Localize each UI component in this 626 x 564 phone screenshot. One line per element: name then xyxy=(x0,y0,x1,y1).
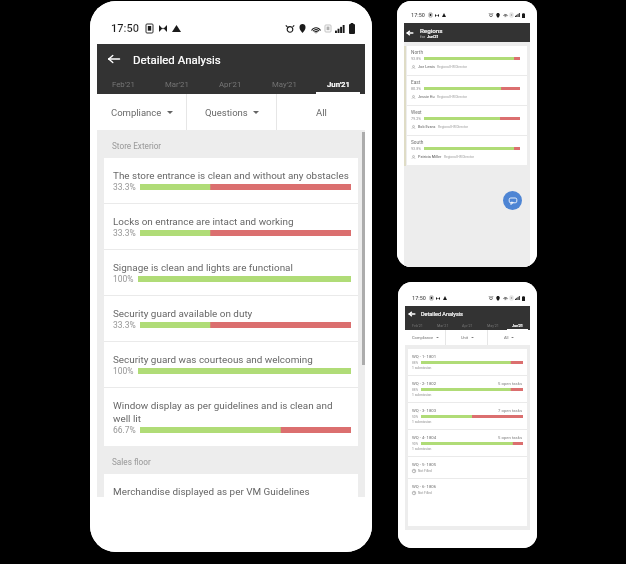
staticText: WQ - 2- 1802 xyxy=(412,381,437,386)
staticText: 66.7% xyxy=(113,425,136,435)
staticText: Apr'21 xyxy=(219,80,242,89)
staticText: May'21 xyxy=(487,324,499,328)
button[interactable]: WQ - 4- 1804 xyxy=(408,430,527,456)
button[interactable]: Back xyxy=(408,310,415,317)
staticText: Not Filled xyxy=(418,491,432,495)
button[interactable]: Security guard available on duty xyxy=(104,296,358,341)
staticText: Window display as per guidelines and is … xyxy=(113,400,351,425)
staticText: 5 open tasks xyxy=(498,381,523,386)
staticText: 88% xyxy=(412,388,419,392)
staticText: Mar'21 xyxy=(165,80,189,89)
button[interactable]: WQ - 5- 1805 xyxy=(408,457,527,478)
button[interactable]: Unit xyxy=(446,330,488,345)
staticText: Detailed Analysis xyxy=(421,311,463,317)
button[interactable]: Window display as per guidelines and is … xyxy=(104,388,358,446)
button[interactable]: All xyxy=(277,94,365,130)
button[interactable]: West xyxy=(407,106,527,135)
staticText: West xyxy=(411,110,422,116)
staticText: Jessie Hu xyxy=(418,95,435,99)
staticText: 1 submission xyxy=(412,366,432,370)
staticText: 80.3% xyxy=(411,87,422,91)
staticText: 100% xyxy=(113,366,134,376)
button[interactable]: Feb'21 xyxy=(97,74,150,94)
button[interactable]: North xyxy=(407,46,527,75)
button[interactable]: May'21 xyxy=(257,74,311,94)
staticText: South xyxy=(411,140,424,146)
staticText: Regional HR Director xyxy=(444,155,474,159)
staticText: The store entrance is clean and without … xyxy=(113,170,349,182)
button[interactable]: WQ - 3- 1803 xyxy=(408,403,527,429)
staticText: Detailed Analysis xyxy=(133,53,221,66)
button[interactable]: Questions xyxy=(187,94,277,130)
button[interactable]: Jun'21 xyxy=(505,321,530,330)
staticText: Signage is clean and lights are function… xyxy=(113,262,293,274)
staticText: Compliance xyxy=(412,335,434,340)
staticText: Compliance xyxy=(111,107,162,118)
staticText: East xyxy=(411,80,421,86)
staticText: Not Filled xyxy=(418,469,432,473)
staticText: Store Exterior xyxy=(112,141,162,151)
staticText: All xyxy=(504,335,509,340)
button[interactable]: Back xyxy=(406,29,413,36)
staticText: All xyxy=(316,107,327,118)
staticText: Security guard was courteous and welcomi… xyxy=(113,354,313,366)
staticText: Locks on entrance are intact and working xyxy=(113,216,294,228)
button[interactable]: Mar'21 xyxy=(150,74,203,94)
button[interactable]: May'21 xyxy=(480,321,505,330)
staticText: Patricia Miller xyxy=(418,155,442,159)
button[interactable]: All xyxy=(488,330,530,345)
button[interactable]: Signage is clean and lights are function… xyxy=(104,250,358,295)
button[interactable]: Security guard was courteous and welcomi… xyxy=(104,342,358,387)
staticText: Questions xyxy=(205,107,248,118)
staticText: Sales floor xyxy=(112,457,151,467)
button[interactable]: WQ - 1- 1801 xyxy=(408,349,527,375)
button[interactable]: Merchandise displayed as per VM Guidelin… xyxy=(104,474,358,497)
button[interactable]: Compliance xyxy=(405,330,446,345)
staticText: 1 submission xyxy=(412,420,432,424)
staticText: Merchandise displayed as per VM Guidelin… xyxy=(113,486,310,497)
staticText: Feb'21 xyxy=(112,80,135,89)
button[interactable]: WQ - 6- 1806 xyxy=(408,479,527,500)
button[interactable]: WQ - 2- 1802 xyxy=(408,376,527,402)
staticText: Regional HR Director xyxy=(438,125,468,129)
staticText: Mar'21 xyxy=(437,324,449,328)
staticText: 50% xyxy=(412,415,419,419)
button[interactable]: South xyxy=(407,136,527,165)
button[interactable]: Locks on entrance are intact and working xyxy=(104,204,358,249)
staticText: Jun'21 xyxy=(512,324,524,328)
staticText: 100% xyxy=(113,274,134,284)
button[interactable]: East xyxy=(407,76,527,105)
staticText: May'21 xyxy=(272,80,297,89)
staticText: for xyxy=(420,34,427,39)
staticText: 90% xyxy=(412,442,419,446)
staticText: 7 open tasks xyxy=(498,408,523,413)
staticText: Feb'21 xyxy=(412,324,423,328)
staticText: Unit xyxy=(461,335,469,340)
staticText: WQ - 1- 1801 xyxy=(412,354,437,359)
button[interactable]: Chat xyxy=(503,191,522,210)
staticText: 5 open tasks xyxy=(498,435,523,440)
staticText: 88% xyxy=(412,361,419,365)
button[interactable]: Apr'21 xyxy=(203,74,257,94)
button[interactable]: Compliance xyxy=(97,94,187,130)
button[interactable]: Feb'21 xyxy=(405,321,430,330)
staticText: 93.8% xyxy=(411,57,422,61)
staticText: 1 submission xyxy=(412,447,432,451)
staticText: 79.2% xyxy=(411,117,422,121)
staticText: WQ - 4- 1804 xyxy=(412,435,437,440)
button[interactable]: The store entrance is clean and without … xyxy=(104,158,358,203)
staticText: Jun'21 xyxy=(327,80,350,89)
staticText: 1 submission xyxy=(412,393,432,397)
staticText: 33.3% xyxy=(113,320,136,330)
staticText: North xyxy=(411,50,423,56)
staticText: Security guard available on duty xyxy=(113,308,253,320)
button[interactable]: Jun'21 xyxy=(311,74,365,94)
staticText: Regions xyxy=(420,27,443,34)
staticText: Jun'21 xyxy=(427,34,439,39)
button[interactable]: Back xyxy=(106,51,122,67)
button[interactable]: Apr'21 xyxy=(455,321,480,330)
staticText: 33.3% xyxy=(113,228,136,238)
staticText: Apr'21 xyxy=(462,324,473,328)
button[interactable]: Mar'21 xyxy=(430,321,455,330)
staticText: 33.3% xyxy=(113,182,136,192)
